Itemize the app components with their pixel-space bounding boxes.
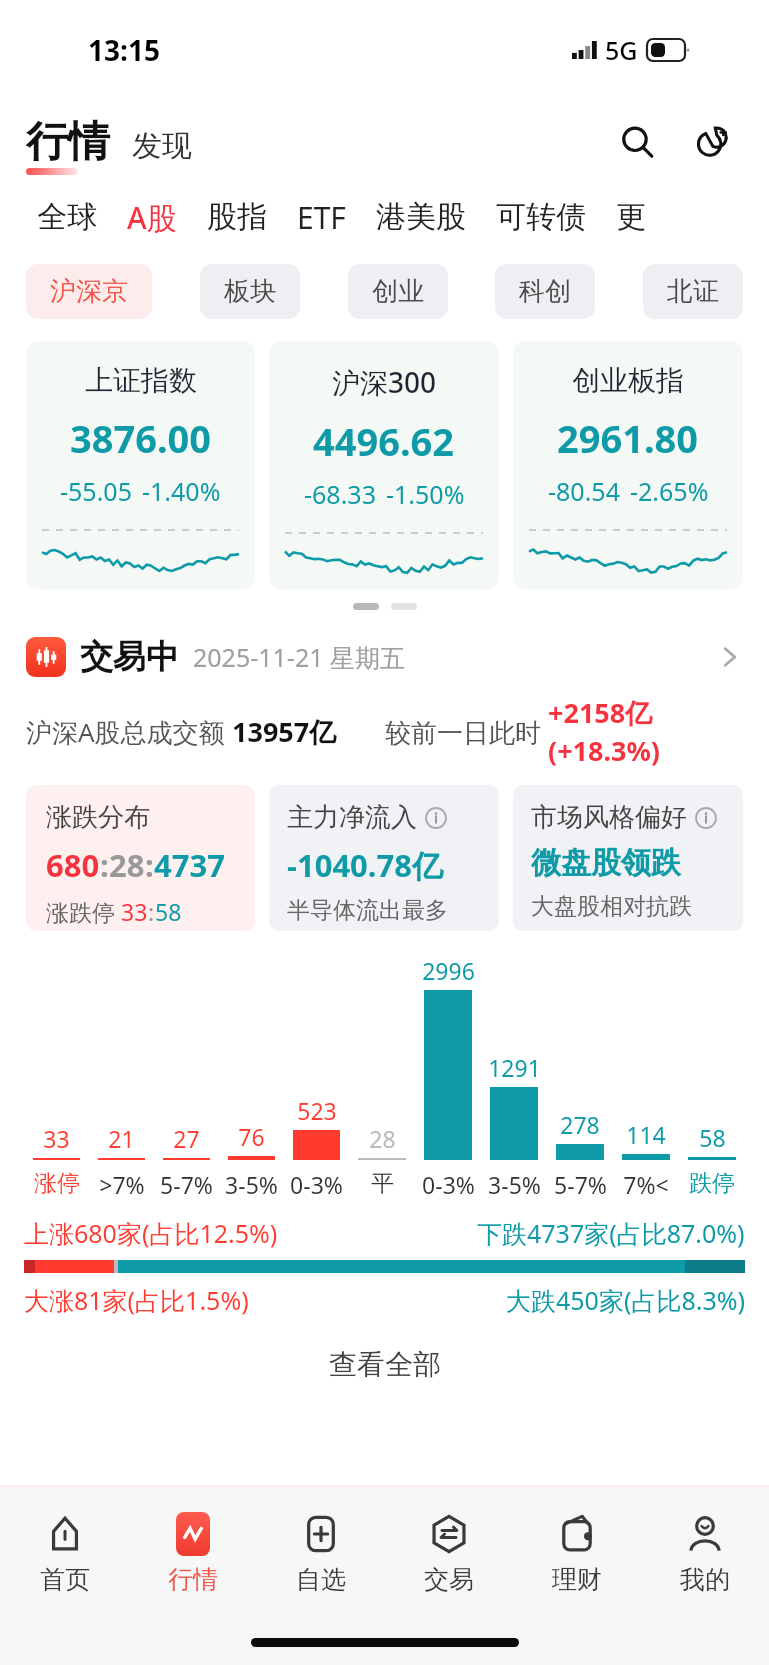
staticText: 交易中 <box>80 636 179 678</box>
button[interactable]: 首页 <box>0 1487 129 1619</box>
staticText: 更 <box>616 198 646 236</box>
staticText: 涨停 <box>34 1169 80 1198</box>
button[interactable]: 交易中 <box>26 636 743 678</box>
staticText: 查看全部 <box>329 1347 441 1382</box>
staticText: 680 <box>46 844 100 886</box>
staticText: 27 <box>173 1123 200 1154</box>
button[interactable]: 可转债 <box>481 192 601 242</box>
staticText: -1.40% <box>142 474 221 508</box>
staticText: : <box>148 896 155 927</box>
button[interactable]: 主力净流入 <box>269 785 499 931</box>
button[interactable]: 全球 <box>22 192 112 242</box>
staticText: 3-5% <box>225 1169 278 1200</box>
staticText: 创业 <box>372 275 424 308</box>
staticText: 21 <box>108 1123 135 1154</box>
button[interactable]: 北证 <box>643 264 743 319</box>
staticText: 大涨81家(占比1.5%) <box>24 1283 249 1317</box>
staticText: 1291 <box>488 1052 541 1083</box>
staticText: 股指 <box>207 198 267 236</box>
button[interactable]: 创业 <box>348 264 448 319</box>
staticText: 278 <box>560 1109 600 1140</box>
button[interactable]: 板块 <box>200 264 300 319</box>
button[interactable]: 港美股 <box>361 192 481 242</box>
button[interactable]: Night mode <box>683 114 739 170</box>
staticText: >7% <box>99 1169 145 1200</box>
staticText: 沪深京 <box>50 275 128 308</box>
staticText: 28 <box>369 1123 396 1154</box>
button[interactable]: 市场风格偏好 <box>513 785 743 931</box>
staticText: 首页 <box>40 1564 90 1595</box>
staticText: 114 <box>626 1119 666 1150</box>
staticText: -68.33 <box>304 477 376 511</box>
staticText: 5-7% <box>554 1169 607 1200</box>
button[interactable]: 行情 <box>129 1487 257 1619</box>
staticText: : <box>145 844 154 886</box>
staticText: 北证 <box>667 275 719 308</box>
button[interactable]: 发现 <box>132 127 192 169</box>
staticText: 7%< <box>623 1169 669 1200</box>
button[interactable]: 科创 <box>495 264 595 319</box>
button[interactable]: 理财 <box>513 1487 641 1619</box>
staticText: 科创 <box>519 275 571 308</box>
staticText: 58 <box>155 896 182 927</box>
staticText: A股 <box>127 197 177 238</box>
button[interactable]: 自选 <box>257 1487 385 1619</box>
staticText: 3-5% <box>488 1169 541 1200</box>
staticText: 交易 <box>424 1564 474 1595</box>
button[interactable]: 涨跌分布 <box>26 785 255 931</box>
button[interactable]: 上证指数 <box>26 341 255 589</box>
staticText: 4737 <box>154 844 225 886</box>
staticText: 沪深300 <box>332 363 437 401</box>
staticText: 板块 <box>224 275 276 308</box>
button[interactable]: 交易 <box>385 1487 513 1619</box>
staticText: 跌停 <box>689 1169 735 1198</box>
staticText: -55.05 <box>60 474 132 508</box>
staticText: -2.65% <box>630 474 709 508</box>
staticText: 创业板指 <box>572 363 684 398</box>
staticText: 可转债 <box>496 198 586 236</box>
staticText: 523 <box>297 1095 337 1126</box>
staticText: 下跌4737家(占比87.0%) <box>477 1216 745 1250</box>
staticText: 理财 <box>552 1564 602 1595</box>
staticText: 主力净流入 <box>287 801 417 834</box>
staticText: : <box>100 844 109 886</box>
staticText: 港美股 <box>376 198 466 236</box>
staticText: 58 <box>699 1122 726 1153</box>
button[interactable]: 查看全部 <box>299 1339 471 1390</box>
staticText: -1.50% <box>386 477 465 511</box>
button[interactable]: ETF <box>282 191 361 244</box>
staticText: 涨跌停 <box>46 896 121 927</box>
button[interactable]: 创业板指 <box>513 341 743 589</box>
button[interactable]: 更 <box>601 192 661 242</box>
staticText: 微盘股领跌 <box>531 844 681 882</box>
staticText: 市场风格偏好 <box>531 801 687 834</box>
staticText: 13:15 <box>88 31 160 69</box>
staticText: 半导体流出最多 <box>287 896 448 925</box>
staticText: 2961.80 <box>557 412 699 464</box>
staticText: 上证指数 <box>85 363 197 398</box>
button[interactable]: 沪深300 <box>269 341 499 589</box>
button[interactable]: 我的 <box>641 1487 769 1619</box>
button[interactable]: Search <box>609 114 665 170</box>
staticText: 平 <box>371 1169 394 1198</box>
staticText: ETF <box>297 197 346 238</box>
button[interactable]: A股 <box>112 191 192 244</box>
staticText: 13957亿 <box>232 713 337 750</box>
staticText: 76 <box>238 1121 265 1152</box>
staticText: 沪深A股总成交额 <box>26 714 232 750</box>
staticText: 5G <box>605 33 638 67</box>
staticText: 28 <box>109 844 145 886</box>
staticText: 3876.00 <box>70 412 212 464</box>
button[interactable]: 沪深京 <box>26 264 152 319</box>
staticText: 上涨680家(占比12.5%) <box>24 1216 278 1250</box>
staticText: 5-7% <box>160 1169 213 1200</box>
staticText: 较前一日此时 <box>385 714 548 750</box>
other: More <box>717 644 743 670</box>
staticText: 大跌450家(占比8.3%) <box>506 1283 745 1317</box>
staticText: 自选 <box>296 1564 346 1595</box>
button[interactable]: 股指 <box>192 192 282 242</box>
button[interactable]: 行情 <box>26 116 110 169</box>
staticText: -80.54 <box>548 474 620 508</box>
staticText: 4496.62 <box>313 415 455 467</box>
staticText: 33 <box>121 896 148 927</box>
